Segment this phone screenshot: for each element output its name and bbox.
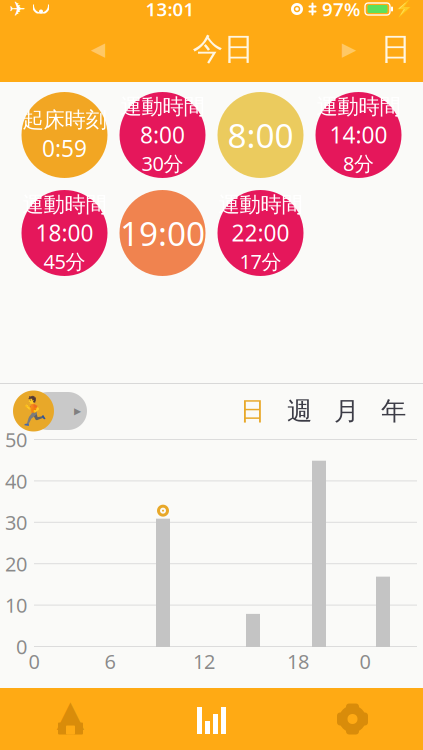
- button[interactable]: 運動時間: [315, 92, 401, 178]
- staticText: 運動時間: [316, 94, 400, 120]
- staticText: 50: [5, 426, 27, 453]
- staticText: 日: [380, 30, 411, 68]
- staticText: 18:00: [35, 218, 93, 248]
- button[interactable]: ホーム: [0, 688, 141, 750]
- staticText: 97%: [322, 0, 360, 21]
- staticText: 19:00: [120, 211, 205, 255]
- button[interactable]: 週: [276, 390, 323, 432]
- button[interactable]: 次の日: [329, 27, 369, 71]
- staticText: 13:01: [145, 0, 194, 21]
- staticText: 起床時刻: [22, 107, 106, 133]
- staticText: 40: [5, 468, 27, 494]
- button[interactable]: 8:00: [217, 92, 303, 178]
- button[interactable]: 前の日: [78, 27, 118, 71]
- button[interactable]: グラフ: [141, 688, 282, 750]
- staticText: ▶: [342, 38, 356, 60]
- staticText: ◀: [91, 38, 105, 60]
- staticText: 運動時間: [22, 192, 106, 218]
- staticText: 8:00: [140, 120, 185, 150]
- button[interactable]: 月: [323, 390, 370, 432]
- staticText: ▲: [56, 693, 84, 733]
- staticText: 18: [287, 648, 309, 675]
- button[interactable]: 年: [370, 390, 417, 432]
- staticText: 10: [5, 592, 27, 618]
- staticText: 6: [104, 648, 115, 675]
- staticText: 20: [5, 550, 27, 577]
- button[interactable]: 日: [229, 390, 276, 432]
- staticText: 今日: [192, 30, 254, 68]
- staticText: 45分: [43, 248, 85, 274]
- staticText: 月: [334, 395, 359, 426]
- button[interactable]: アクティビティの種類: [13, 390, 91, 432]
- button[interactable]: 運動時間: [119, 92, 205, 178]
- staticText: 8分: [343, 150, 374, 176]
- staticText: 年: [381, 395, 406, 426]
- staticText: 22:00: [231, 218, 289, 248]
- staticText: ⚡: [394, 0, 414, 18]
- button[interactable]: 19:00: [119, 190, 205, 276]
- staticText: 0: [28, 648, 39, 675]
- staticText: 🏃: [16, 395, 51, 427]
- staticText: 30: [5, 509, 27, 536]
- staticText: 0: [359, 648, 370, 675]
- button[interactable]: 起床時刻: [21, 92, 107, 178]
- staticText: 運動時間: [120, 94, 204, 120]
- staticText: ▶: [74, 406, 81, 416]
- button[interactable]: 日: [369, 27, 423, 71]
- staticText: 12: [193, 648, 215, 675]
- staticText: 30分: [141, 150, 183, 176]
- staticText: 17分: [239, 248, 281, 274]
- staticText: 8:00: [227, 113, 293, 157]
- button[interactable]: 設定: [282, 688, 423, 750]
- staticText: 0: [16, 633, 27, 660]
- staticText: 日: [240, 395, 265, 426]
- staticText: ✈: [9, 0, 26, 20]
- staticText: 週: [287, 395, 312, 426]
- staticText: 運動時間: [218, 192, 302, 218]
- staticText: 14:00: [329, 120, 387, 150]
- button[interactable]: 運動時間: [217, 190, 303, 276]
- staticText: 0:59: [42, 133, 87, 163]
- button[interactable]: 運動時間: [21, 190, 107, 276]
